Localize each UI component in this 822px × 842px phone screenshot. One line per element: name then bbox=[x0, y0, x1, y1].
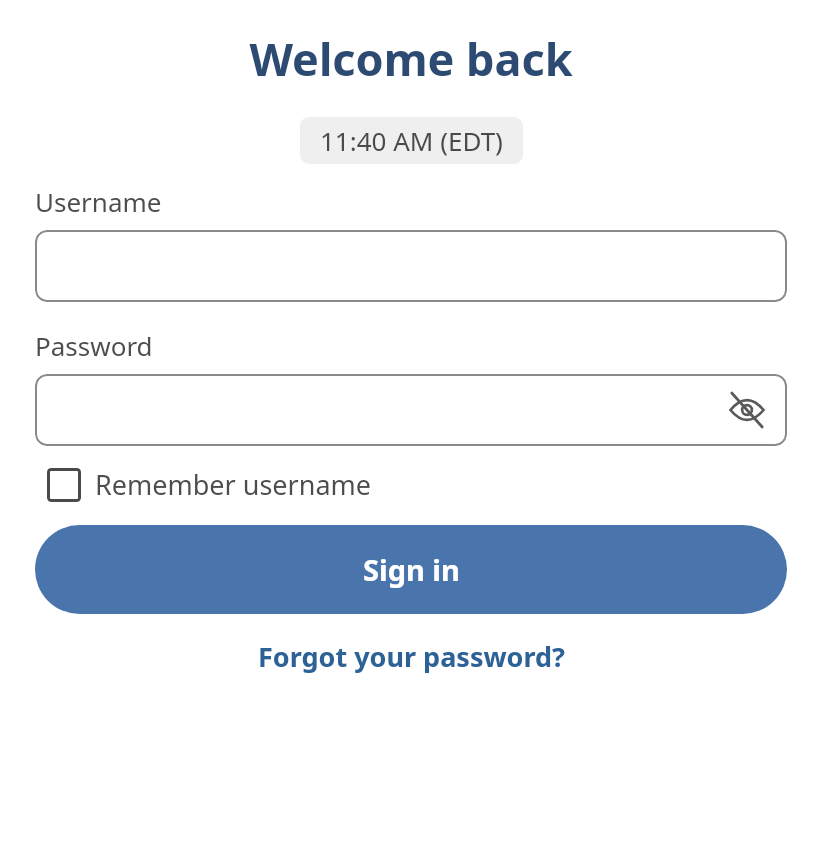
button[interactable]: 11:40 AM (EDT) bbox=[300, 117, 523, 164]
button[interactable]: Show password bbox=[35, 374, 787, 446]
staticText: Username bbox=[35, 184, 162, 219]
button[interactable]: Show password bbox=[719, 382, 775, 438]
staticText: 11:40 AM (EDT) bbox=[320, 123, 503, 158]
button[interactable]: Remember username bbox=[45, 460, 374, 509]
button[interactable]: Forgot your password? bbox=[250, 634, 573, 679]
staticText: Welcome back bbox=[249, 28, 573, 89]
staticText: Forgot your password? bbox=[258, 638, 565, 675]
button[interactable]: Sign in bbox=[35, 525, 787, 614]
button[interactable] bbox=[35, 230, 787, 302]
staticText: Remember username bbox=[95, 466, 372, 503]
staticText: Sign in bbox=[363, 550, 460, 589]
staticText: Password bbox=[35, 328, 153, 363]
